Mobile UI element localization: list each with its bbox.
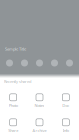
button[interactable]: Notes	[26, 80, 53, 116]
button[interactable]: Info	[53, 107, 79, 140]
staticText: Share	[8, 128, 18, 133]
button[interactable]: Shuffle	[6, 59, 13, 66]
staticText: Photo	[9, 103, 18, 108]
staticText: Info	[63, 128, 69, 133]
button[interactable]: Share	[0, 107, 26, 140]
button[interactable]: Archive	[26, 107, 53, 140]
button[interactable]: Photo	[0, 80, 26, 116]
staticText: Notes	[34, 103, 44, 108]
staticText: Archive	[32, 128, 46, 133]
staticText: Recently shared	[4, 79, 31, 84]
staticText: Doc	[62, 103, 69, 108]
button[interactable]: Next	[51, 59, 58, 66]
button[interactable]: Play	[36, 59, 43, 66]
staticText: Sample Title	[5, 46, 26, 52]
button[interactable]: Repeat	[66, 59, 73, 66]
button[interactable]: Previous	[21, 59, 28, 66]
button[interactable]: Doc	[53, 80, 79, 116]
